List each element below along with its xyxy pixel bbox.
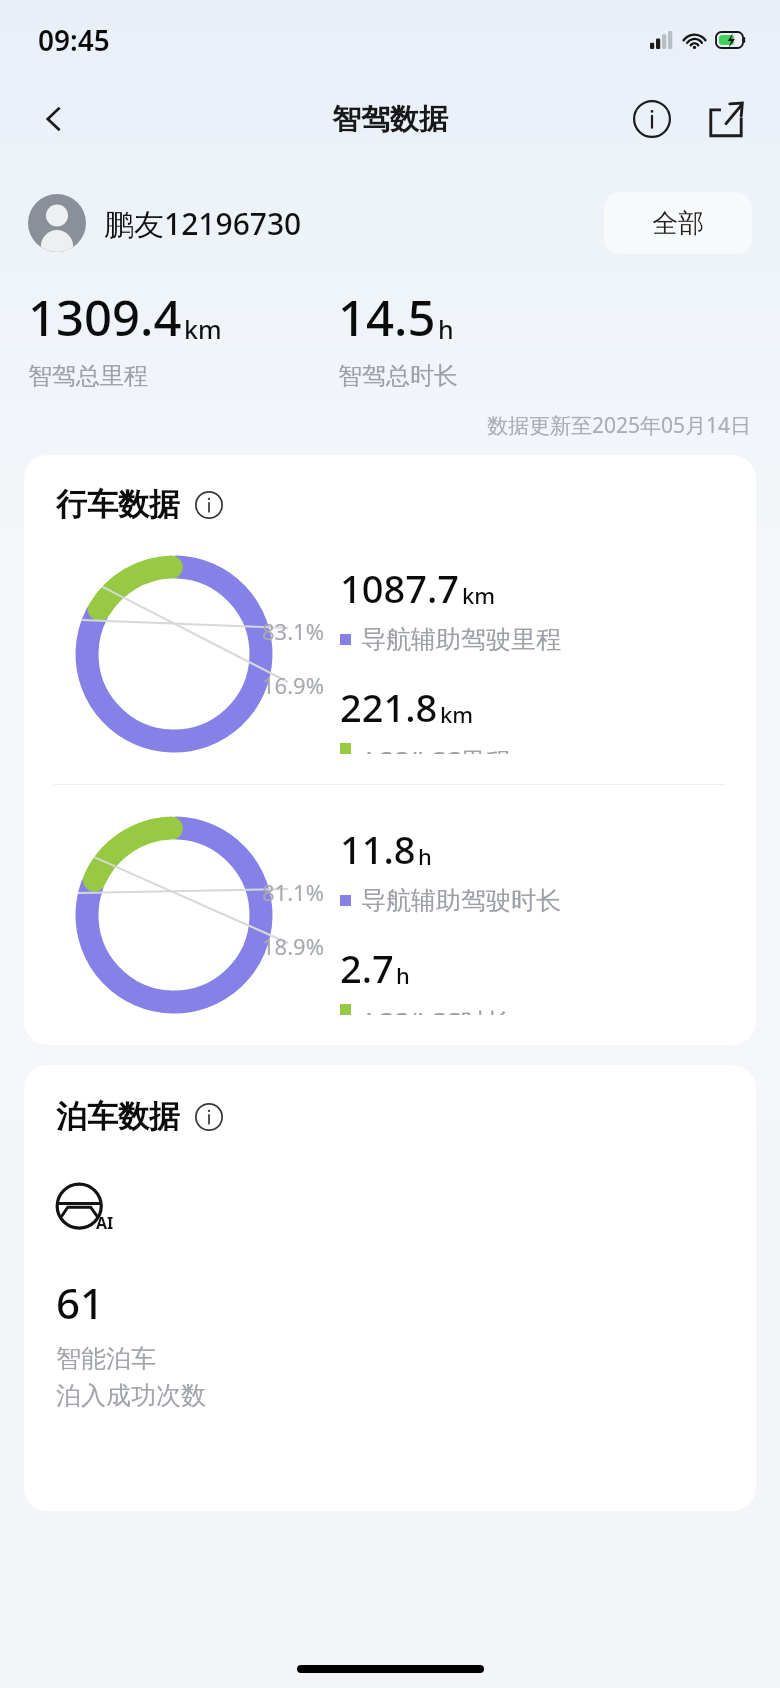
button[interactable]: Info bbox=[192, 488, 226, 522]
staticText: km bbox=[184, 312, 222, 346]
staticText: 全部 bbox=[652, 207, 704, 240]
button[interactable]: Info bbox=[626, 93, 678, 145]
staticText: 泊车数据 bbox=[56, 1097, 180, 1136]
staticText: 61 bbox=[56, 1274, 105, 1331]
staticText: 2.7 bbox=[340, 942, 394, 994]
staticText: 16.9% bbox=[262, 670, 324, 700]
staticText: 泊入成功次数 bbox=[56, 1380, 206, 1411]
staticText: ACC/LCC里程 bbox=[361, 743, 511, 754]
button[interactable]: 行车数据 bbox=[24, 455, 756, 1045]
staticText: 智能泊车 bbox=[56, 1343, 156, 1374]
staticText: 导航辅助驾驶时长 bbox=[361, 885, 561, 916]
staticText: 09:45 bbox=[38, 21, 110, 59]
staticText: 221.8 bbox=[340, 681, 438, 733]
staticText: h bbox=[396, 960, 410, 990]
staticText: 14.5 bbox=[338, 284, 436, 351]
staticText: 1309.4 bbox=[28, 284, 182, 351]
staticText: 鹏友12196730 bbox=[104, 203, 302, 244]
staticText: 18.9% bbox=[262, 931, 324, 961]
staticText: 智驾总里程 bbox=[28, 361, 148, 391]
button[interactable]: Info bbox=[192, 1100, 226, 1134]
staticText: 83.1% bbox=[262, 616, 324, 646]
staticText: km bbox=[440, 699, 474, 729]
staticText: 导航辅助驾驶里程 bbox=[361, 624, 561, 655]
staticText: km bbox=[462, 580, 496, 610]
staticText: 数据更新至2025年05月14日 bbox=[487, 411, 752, 440]
staticText: ACC/LCC时长 bbox=[361, 1004, 511, 1015]
staticText: AI bbox=[96, 1212, 114, 1234]
staticText: 智驾总时长 bbox=[338, 361, 458, 391]
staticText: 1087.7 bbox=[340, 562, 460, 614]
staticText: 81.1% bbox=[262, 877, 324, 907]
button[interactable]: 全部 bbox=[604, 192, 752, 254]
staticText: h bbox=[438, 312, 454, 346]
staticText: 行车数据 bbox=[56, 485, 180, 524]
button[interactable]: 泊车数据 bbox=[24, 1065, 756, 1511]
button[interactable]: Back bbox=[26, 91, 82, 147]
staticText: 11.8 bbox=[340, 823, 416, 875]
staticText: h bbox=[418, 841, 432, 871]
button[interactable]: Share bbox=[700, 93, 752, 145]
staticText: 智驾数据 bbox=[332, 101, 448, 138]
